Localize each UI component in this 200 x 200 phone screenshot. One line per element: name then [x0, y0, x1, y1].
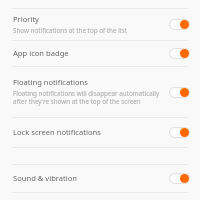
staticText: Floating notifications will disappear au… — [13, 90, 163, 106]
button[interactable]: App icon badge — [0, 41, 200, 66]
staticText: Lock screen notifications — [13, 128, 101, 138]
button[interactable]: Toggle setting — [169, 48, 190, 59]
button[interactable]: Toggle setting — [169, 87, 190, 98]
staticText: Show notifications at the top of the lis… — [13, 27, 127, 35]
button[interactable]: Floating notifications — [0, 67, 200, 117]
button[interactable]: Priority — [0, 9, 200, 40]
staticText: Priority — [13, 15, 39, 25]
button[interactable]: Lock screen notifications — [0, 118, 200, 147]
button[interactable]: Toggle setting — [169, 173, 190, 184]
staticText: Floating notifications — [13, 78, 88, 88]
staticText: Sound & vibration — [13, 174, 78, 184]
button[interactable]: Toggle setting — [169, 127, 190, 138]
button[interactable]: Sound & vibration — [0, 165, 200, 192]
button[interactable]: Toggle setting — [169, 19, 190, 30]
staticText: App icon badge — [13, 49, 69, 59]
